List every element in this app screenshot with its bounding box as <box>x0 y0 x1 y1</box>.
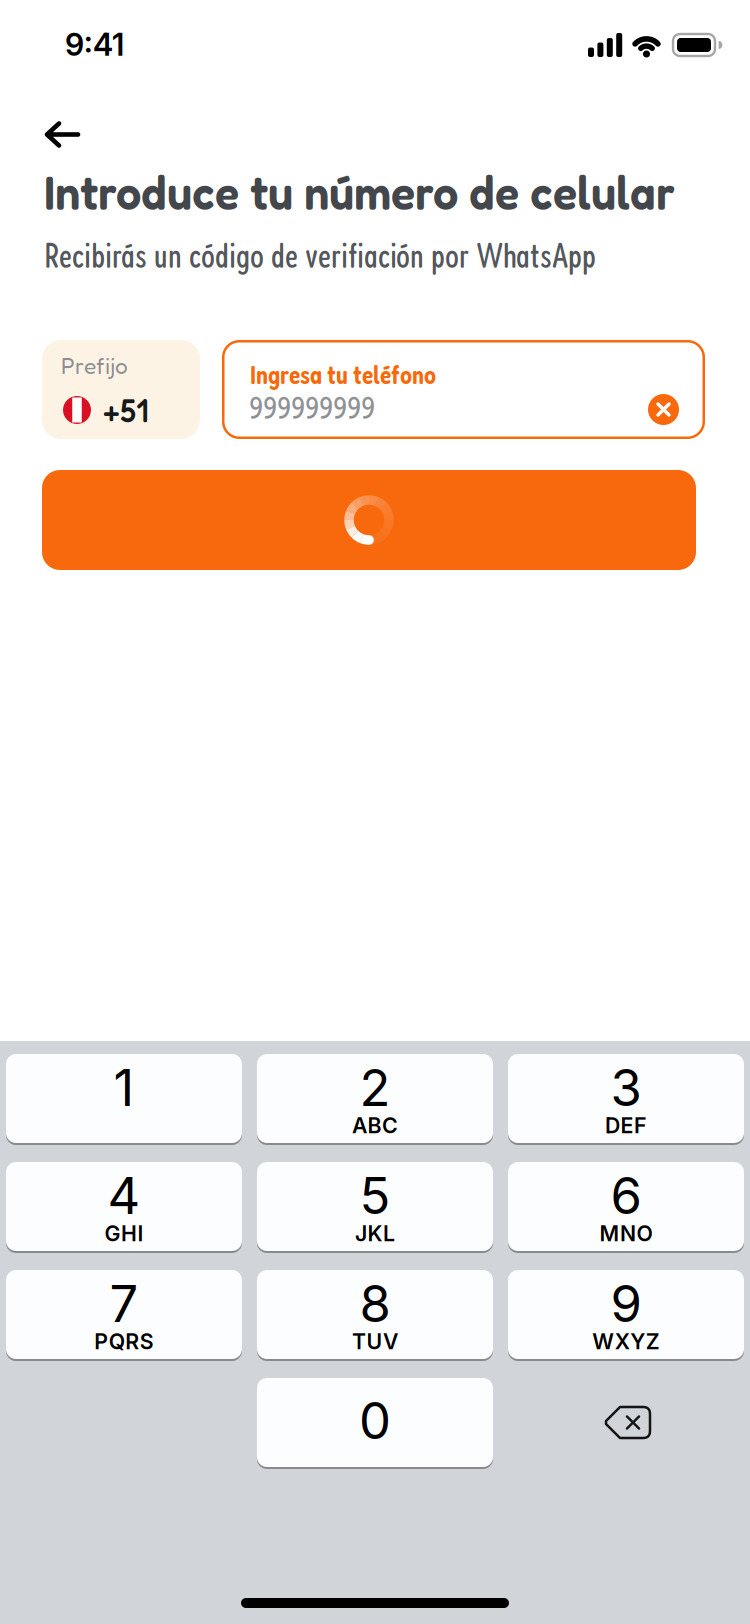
staticText: 999999999 <box>249 389 375 426</box>
staticText: 9:41 <box>65 26 124 63</box>
button[interactable]: Clear <box>648 394 679 425</box>
staticText: MNO <box>599 1221 652 1246</box>
button[interactable]: 5 <box>257 1162 493 1251</box>
staticText: Ingresa tu teléfono <box>250 358 436 390</box>
button[interactable]: 4 <box>6 1162 242 1251</box>
staticText: WXYZ <box>592 1329 660 1354</box>
button[interactable]: 7 <box>6 1270 242 1359</box>
button[interactable]: Ingresa tu teléfono <box>222 340 705 439</box>
button[interactable]: 9 <box>508 1270 744 1359</box>
button[interactable]: 1 <box>6 1054 242 1143</box>
staticText: 8 <box>359 1273 390 1334</box>
staticText: Introduce tu número de celular <box>44 163 675 221</box>
staticText: GHI <box>104 1221 143 1246</box>
staticText: 6 <box>610 1165 641 1226</box>
staticText: 9 <box>610 1273 641 1334</box>
staticText: DEF <box>605 1113 647 1138</box>
staticText: 3 <box>610 1057 641 1118</box>
staticText: TUV <box>352 1329 398 1354</box>
staticText: 5 <box>359 1165 390 1226</box>
staticText: +51 <box>103 391 148 430</box>
staticText: JKL <box>355 1221 395 1246</box>
staticText: PQRS <box>94 1329 154 1354</box>
staticText: 0 <box>359 1390 391 1451</box>
staticText: Prefijo <box>61 352 128 379</box>
staticText: 4 <box>107 1165 140 1226</box>
button[interactable]: 8 <box>257 1270 493 1359</box>
button[interactable]: Delete <box>508 1378 744 1467</box>
button[interactable]: 3 <box>508 1054 744 1143</box>
button[interactable]: Loading <box>42 470 696 570</box>
button[interactable]: 0 <box>257 1378 493 1467</box>
button[interactable]: Back <box>0 0 78 147</box>
button[interactable]: Prefijo <box>42 340 200 439</box>
staticText: ABC <box>352 1113 398 1138</box>
button[interactable]: 2 <box>257 1054 493 1143</box>
staticText: Recibirás un código de verifiación por W… <box>44 234 596 276</box>
staticText: 2 <box>359 1057 390 1118</box>
button[interactable]: 6 <box>508 1162 744 1251</box>
staticText: 1 <box>113 1057 134 1118</box>
staticText: 7 <box>109 1273 138 1334</box>
